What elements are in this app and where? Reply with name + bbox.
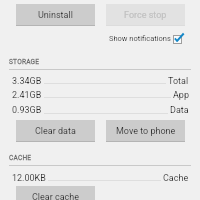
button[interactable]: Clear cache xyxy=(16,186,95,200)
button[interactable]: 3.34GB xyxy=(0,76,200,91)
staticText: 12.00KB xyxy=(12,173,46,184)
other: Show notifications checkbox xyxy=(173,33,185,45)
staticText: App xyxy=(173,90,189,101)
button[interactable]: Clear data xyxy=(16,120,95,141)
button[interactable]: 2.41GB xyxy=(0,90,200,105)
staticText: Total xyxy=(168,76,189,87)
staticText: Move to phone xyxy=(116,126,176,137)
staticText: Data xyxy=(170,105,189,116)
staticText: Clear cache xyxy=(32,192,80,200)
staticText: Force stop xyxy=(124,10,167,21)
staticText: 0.93GB xyxy=(12,105,42,116)
button[interactable]: Show notifications xyxy=(104,31,190,45)
staticText: Show notifications xyxy=(109,34,171,43)
staticText: Uninstall xyxy=(38,10,73,21)
staticText: CACHE xyxy=(9,154,32,162)
staticText: Clear data xyxy=(35,126,76,137)
button[interactable]: Move to phone xyxy=(106,120,185,141)
staticText: 3.34GB xyxy=(12,76,42,87)
button[interactable]: Force stop xyxy=(106,4,185,25)
staticText: Cache xyxy=(163,173,189,184)
button[interactable]: 12.00KB xyxy=(0,173,200,188)
button[interactable]: 0.93GB xyxy=(0,105,200,120)
staticText: 2.41GB xyxy=(12,90,42,101)
button[interactable]: Uninstall xyxy=(16,4,95,25)
staticText: STORAGE xyxy=(9,58,40,66)
